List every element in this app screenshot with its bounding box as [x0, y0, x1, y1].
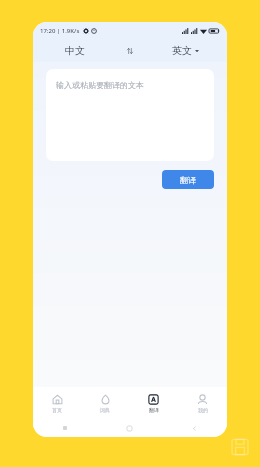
button[interactable]: 首页 [33, 387, 81, 419]
staticText: 输入或粘贴要翻译的文本 [56, 80, 144, 90]
button[interactable]: Recents [63, 426, 67, 430]
staticText: 中文 [65, 44, 85, 57]
button[interactable]: 翻译 [129, 387, 178, 419]
staticText: 17:20 | 1.9K/s [40, 27, 80, 35]
button[interactable]: Swap languages [117, 39, 143, 62]
button[interactable]: 我的 [178, 387, 227, 419]
button[interactable]: 英文 [143, 39, 227, 62]
staticText: 翻译 [180, 175, 196, 185]
staticText: 首页 [52, 407, 62, 413]
button[interactable]: Back [192, 426, 197, 431]
button[interactable]: Home [127, 426, 132, 431]
button[interactable]: 翻译 [162, 170, 214, 189]
staticText: 词典 [100, 407, 110, 413]
button[interactable]: 输入或粘贴要翻译的文本 [46, 69, 214, 161]
button[interactable]: 中文 [33, 39, 117, 62]
staticText: 我的 [198, 407, 208, 413]
staticText: 英文 [172, 44, 192, 57]
staticText: 翻译 [149, 407, 159, 413]
button[interactable]: 词典 [81, 387, 129, 419]
